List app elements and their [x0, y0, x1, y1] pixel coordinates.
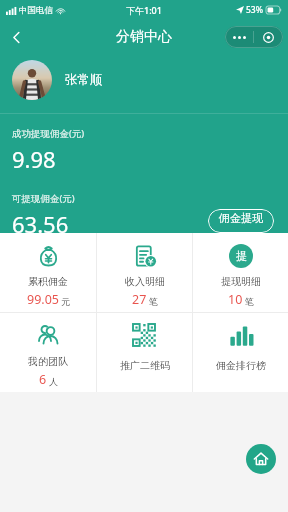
staticText: 累积佣金	[28, 275, 68, 288]
button[interactable]: 累积佣金	[0, 233, 96, 312]
staticText: 提	[236, 249, 247, 263]
staticText: 收入明细	[125, 275, 165, 288]
staticText: 可提现佣金(元)	[12, 192, 75, 205]
button[interactable]: Back	[0, 21, 32, 53]
button[interactable]: 我的团队	[0, 313, 96, 392]
staticText: 元	[61, 296, 70, 307]
staticText: 张常顺	[65, 72, 103, 88]
staticText: 佣金排行榜	[216, 359, 266, 372]
staticText: 中国电信	[19, 5, 53, 16]
staticText: 提现明细	[221, 275, 261, 288]
button[interactable]: 收入明细	[97, 233, 192, 312]
button[interactable]	[12, 60, 52, 100]
staticText: 53%	[246, 4, 263, 16]
button[interactable]: More	[225, 26, 253, 48]
button[interactable]: Close	[254, 26, 283, 48]
staticText: 佣金提现	[219, 211, 263, 225]
button[interactable]: 推广二维码	[97, 313, 192, 392]
button[interactable]: Home	[246, 444, 276, 474]
button[interactable]: 提	[193, 233, 288, 312]
staticText: 10	[228, 291, 243, 308]
staticText: 分销中心	[116, 28, 172, 46]
staticText: 99.05	[27, 291, 59, 308]
staticText: 成功提现佣金(元)	[12, 127, 85, 140]
staticText: 6	[39, 371, 47, 388]
staticText: 63.56	[12, 209, 69, 233]
staticText: 推广二维码	[120, 359, 170, 372]
staticText: 笔	[245, 296, 254, 307]
staticText: 我的团队	[28, 355, 68, 368]
staticText: 人	[49, 376, 58, 387]
staticText: 9.98	[12, 144, 56, 174]
button[interactable]: 佣金提现	[208, 209, 274, 233]
staticText: 下午1:01	[126, 4, 162, 16]
staticText: 笔	[149, 296, 158, 307]
staticText: 27	[132, 291, 147, 308]
button[interactable]: 佣金排行榜	[193, 313, 288, 392]
